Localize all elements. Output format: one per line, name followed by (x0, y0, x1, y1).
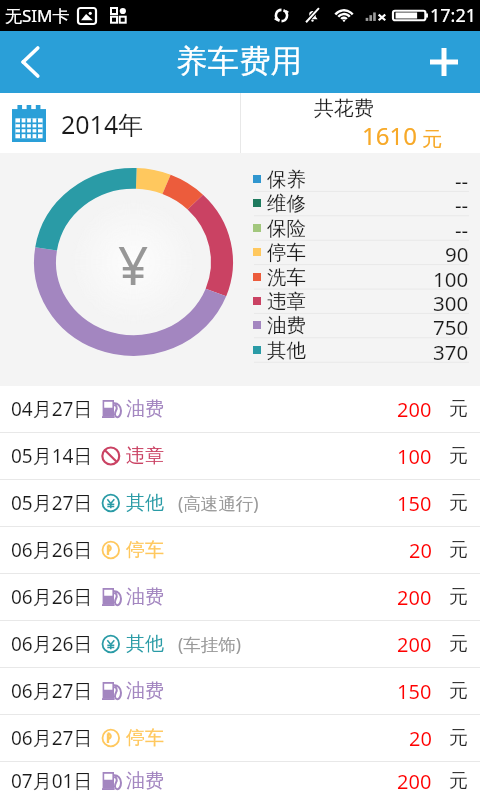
staticText: 共花费 (314, 96, 374, 121)
button[interactable]: Add (408, 31, 480, 93)
staticText: -- (455, 167, 469, 191)
staticText: 05月14日 (11, 443, 93, 469)
staticText: 其他 (126, 491, 164, 515)
staticText: 保养 (267, 167, 306, 191)
staticText: 其他 (126, 632, 164, 656)
button[interactable]: 06月26日 (0, 621, 480, 667)
staticText: 油费 (126, 397, 164, 421)
staticText: 元 (449, 726, 468, 750)
button[interactable]: 04月27日 (0, 386, 480, 432)
button[interactable]: 06月27日 (0, 715, 480, 761)
staticText: 维修 (267, 191, 306, 215)
staticText: -- (455, 216, 469, 240)
button[interactable]: 06月26日 (0, 574, 480, 620)
staticText: 养车费用 (176, 42, 302, 82)
staticText: 元 (449, 538, 468, 562)
button[interactable]: 其他 (244, 338, 480, 362)
staticText: 04月27日 (11, 396, 93, 422)
button[interactable]: 07月01日 (0, 762, 480, 800)
staticText: 06月26日 (11, 631, 93, 657)
staticText: 元 (449, 632, 468, 656)
staticText: 20 (409, 537, 432, 564)
staticText: 油费 (267, 313, 306, 337)
staticText: 无SIM卡 (5, 4, 70, 27)
button[interactable]: 油费 (244, 313, 480, 337)
staticText: 1610 (362, 119, 417, 152)
button[interactable]: 06月26日 (0, 527, 480, 573)
staticText: 06月26日 (11, 537, 93, 563)
staticText: 元 (422, 127, 442, 152)
staticText: 200 (397, 396, 432, 423)
staticText: 元 (449, 585, 468, 609)
staticText: (高速通行) (178, 491, 259, 515)
staticText: 200 (397, 768, 432, 795)
staticText: 违章 (267, 289, 306, 313)
staticText: 150 (397, 490, 432, 517)
staticText: 元 (449, 444, 468, 468)
staticText: 06月27日 (11, 725, 93, 751)
staticText: 17:21 (430, 3, 477, 28)
staticText: 洗车 (267, 265, 306, 289)
button[interactable]: 维修 (244, 191, 480, 215)
staticText: ¥ (118, 228, 149, 300)
button[interactable]: 保险 (244, 216, 480, 240)
staticText: 2014年 (61, 107, 144, 141)
staticText: 20 (409, 725, 432, 752)
button[interactable]: 05月14日 (0, 433, 480, 479)
staticText: 其他 (267, 338, 306, 362)
staticText: 元 (449, 397, 468, 421)
staticText: 05月27日 (11, 490, 93, 516)
staticText: 停车 (267, 240, 306, 264)
button[interactable]: 2014年 (0, 93, 240, 153)
staticText: 油费 (126, 679, 164, 703)
staticText: 300 (433, 289, 469, 313)
staticText: 200 (397, 584, 432, 611)
staticText: 保险 (267, 216, 306, 240)
staticText: 油费 (126, 585, 164, 609)
button[interactable]: 保养 (244, 167, 480, 191)
staticText: 100 (397, 443, 432, 470)
staticText: 06月26日 (11, 584, 93, 610)
staticText: 元 (449, 491, 468, 515)
staticText: 停车 (126, 538, 164, 562)
staticText: (车挂饰) (178, 632, 241, 656)
button[interactable]: 05月27日 (0, 480, 480, 526)
button[interactable]: 洗车 (244, 265, 480, 289)
staticText: 370 (433, 338, 469, 362)
staticText: -- (455, 191, 469, 215)
button[interactable]: Back (0, 31, 60, 93)
staticText: 90 (445, 240, 469, 264)
staticText: 元 (449, 769, 468, 793)
staticText: 违章 (126, 444, 164, 468)
staticText: 07月01日 (11, 768, 93, 794)
staticText: 200 (397, 631, 432, 658)
staticText: 油费 (126, 769, 164, 793)
staticText: 06月27日 (11, 678, 93, 704)
button[interactable]: 停车 (244, 240, 480, 264)
staticText: 150 (397, 678, 432, 705)
staticText: 元 (449, 679, 468, 703)
staticText: 750 (433, 313, 469, 337)
button[interactable]: 06月27日 (0, 668, 480, 714)
staticText: 100 (433, 265, 469, 289)
button[interactable]: 违章 (244, 289, 480, 313)
staticText: 停车 (126, 726, 164, 750)
